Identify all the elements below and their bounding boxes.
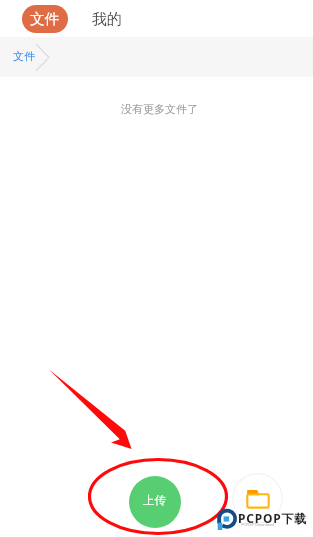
staticText: 上传 [143, 493, 166, 507]
button[interactable]: 我的 [92, 5, 122, 33]
button[interactable]: 文件 [22, 5, 68, 33]
staticText: 文件 [13, 49, 35, 63]
button[interactable]: 文件 [13, 37, 35, 77]
staticText: 我的 [92, 10, 122, 29]
staticText: PCPOP Download [241, 522, 274, 527]
staticText: PCPOP下载 [238, 510, 308, 526]
button[interactable]: 上传 [129, 476, 181, 528]
staticText: 没有更多文件了 [121, 102, 198, 116]
staticText: 文件 [30, 10, 60, 29]
button[interactable]: Files folder [232, 473, 283, 524]
